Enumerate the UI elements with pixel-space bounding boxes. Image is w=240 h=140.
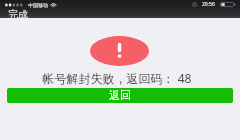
button[interactable]: 返回 [7, 88, 233, 103]
staticText: 帐号解封失败，返回码： 48 [0, 70, 237, 86]
staticText: 返回 [109, 88, 131, 102]
staticText: 中国移动 [28, 2, 48, 8]
staticText: 20:56 [202, 1, 215, 8]
staticText: 完成 [8, 8, 28, 18]
button[interactable]: 完成 [8, 8, 28, 18]
